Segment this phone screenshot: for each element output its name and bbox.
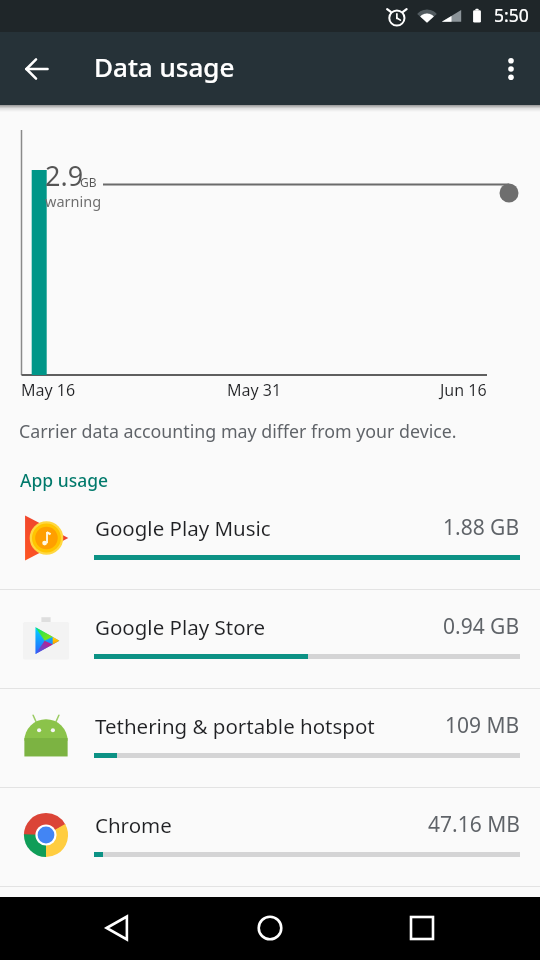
staticText: Data usage: [94, 49, 235, 84]
staticText: Chrome: [95, 811, 172, 839]
button[interactable]: Google Play Store: [0, 590, 540, 688]
button[interactable]: Recent apps: [402, 908, 442, 948]
staticText: GB: [80, 174, 97, 190]
staticText: May 31: [227, 379, 282, 401]
button[interactable]: Chrome: [0, 788, 540, 886]
button[interactable]: Home: [250, 908, 290, 948]
button[interactable]: Tethering & portable hotspot: [0, 689, 540, 787]
staticText: 5:50: [494, 3, 529, 27]
staticText: warning: [45, 191, 102, 211]
staticText: 2.9: [45, 157, 84, 194]
staticText: App usage: [20, 468, 109, 492]
staticText: 0.94 GB: [443, 612, 520, 641]
button[interactable]: Google Play Music: [0, 491, 540, 589]
button[interactable]: More options: [487, 45, 535, 93]
button[interactable]: Navigate up: [13, 45, 61, 93]
staticText: Google Play Store: [95, 613, 266, 641]
staticText: 47.16 MB: [428, 810, 520, 839]
button[interactable]: Back: [97, 908, 137, 948]
staticText: 1.88 GB: [443, 513, 520, 542]
staticText: Tethering & portable hotspot: [95, 712, 375, 740]
staticText: Carrier data accounting may differ from …: [19, 419, 457, 443]
staticText: Google Play Music: [95, 514, 271, 542]
staticText: 109 MB: [445, 711, 520, 740]
staticText: May 16: [21, 379, 76, 401]
staticText: Jun 16: [440, 379, 487, 401]
